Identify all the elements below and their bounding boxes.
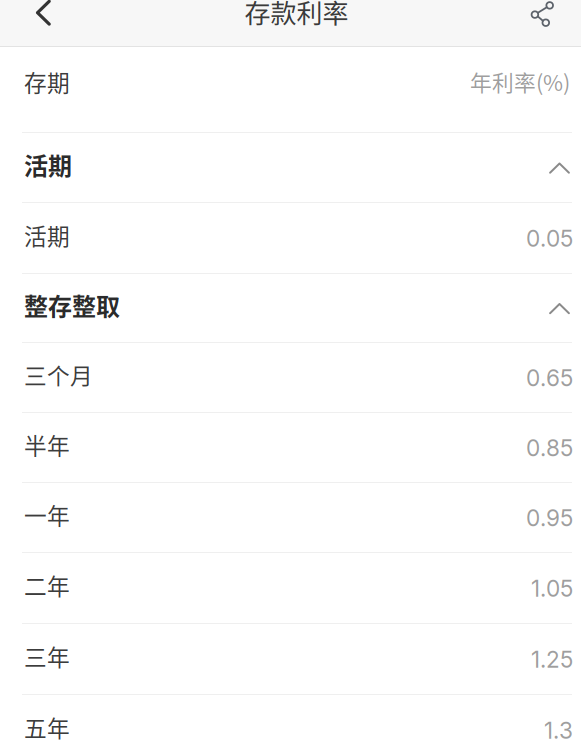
button[interactable]: 三年 [0, 624, 581, 694]
staticText: 1.25 [531, 646, 573, 673]
button[interactable]: 五年 [0, 695, 581, 746]
staticText: 活期 [24, 147, 72, 182]
button[interactable]: 一年 [0, 483, 581, 552]
staticText: 存款利率 [244, 0, 348, 31]
staticText: 1.3 [544, 717, 573, 744]
staticText: 1.05 [531, 575, 573, 602]
button[interactable]: 整存整取 [0, 274, 581, 342]
staticText: 0.85 [526, 434, 573, 462]
button[interactable]: 三个月 [0, 343, 581, 412]
staticText: 三个月 [24, 358, 93, 391]
button[interactable]: 活期 [0, 203, 581, 273]
staticText: 0.95 [526, 504, 573, 532]
button[interactable]: Back [0, 0, 70, 46]
button[interactable]: 半年 [0, 413, 581, 482]
staticText: 0.65 [526, 364, 573, 392]
staticText: 一年 [24, 498, 70, 531]
button[interactable]: Share [501, 0, 571, 46]
staticText: 二年 [24, 569, 70, 601]
staticText: 三年 [24, 640, 70, 672]
staticText: 五年 [24, 711, 70, 743]
button[interactable]: 二年 [0, 553, 581, 623]
staticText: 整存整取 [24, 288, 120, 322]
staticText: 年利率(%) [470, 66, 570, 97]
staticText: 半年 [24, 428, 70, 461]
button[interactable]: 活期 [0, 133, 581, 202]
staticText: 0.05 [526, 225, 573, 252]
staticText: 活期 [24, 219, 70, 251]
staticText: 存期 [24, 65, 70, 98]
